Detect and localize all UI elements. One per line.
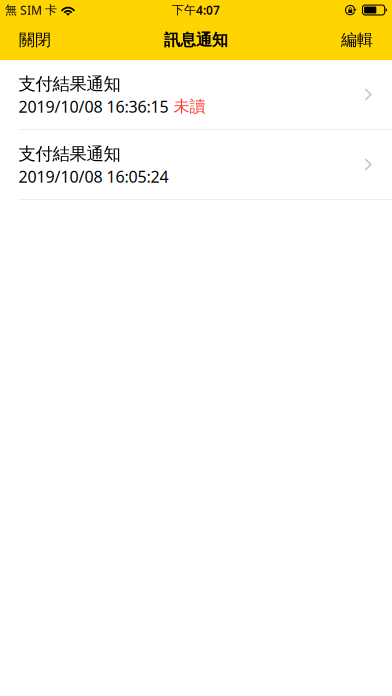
staticText: 無	[5, 3, 17, 17]
staticText: SIM	[20, 2, 42, 18]
staticText: 支付結果通知	[18, 73, 120, 95]
staticText: 2019/10/08 16:05:24	[18, 166, 168, 187]
staticText: 4:07	[196, 2, 220, 18]
staticText: 訊息通知	[164, 30, 228, 50]
staticText: 編輯	[341, 30, 373, 50]
button[interactable]: 支付結果通知	[0, 60, 392, 129]
button[interactable]: 編輯	[327, 20, 392, 60]
staticText: 下午	[172, 3, 196, 17]
staticText: 關閉	[19, 30, 51, 50]
button[interactable]: 關閉	[0, 20, 65, 60]
staticText: 2019/10/08 16:36:15	[18, 96, 168, 117]
button[interactable]: 支付結果通知	[0, 130, 392, 199]
staticText: 卡	[45, 3, 57, 17]
staticText: 支付結果通知	[18, 143, 120, 165]
staticText: 未讀	[173, 97, 205, 116]
